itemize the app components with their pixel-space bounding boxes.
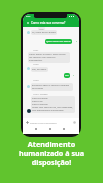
staticText: Como esta sua conversa? bbox=[31, 21, 66, 25]
staticText: Quero saber dos planos bbox=[46, 40, 71, 43]
button[interactable]: Send bbox=[73, 121, 76, 124]
staticText: Digite uma mensagem bbox=[30, 121, 57, 124]
button[interactable]: Enviamos agora o resumo completo dos pla… bbox=[31, 83, 73, 91]
button[interactable]: Claro! Temos 3 planos. Posso enviar um r… bbox=[28, 52, 70, 63]
staticText: 9:41 bbox=[26, 15, 31, 18]
staticText: 12:32 bbox=[33, 63, 39, 66]
staticText: Claro! Temos 3 planos. Posso enviar um r… bbox=[29, 53, 69, 62]
staticText: Oi, como posso ajudar? bbox=[32, 31, 56, 34]
staticText: Plano Essencial Plano Plus Plano Premium… bbox=[32, 97, 74, 112]
staticText: 12:33 bbox=[33, 79, 39, 82]
staticText: 12:34 · Equipe bbox=[33, 93, 48, 96]
button[interactable]: Quero saber dos planos bbox=[45, 39, 72, 44]
button[interactable]: Plano Essencial Plano Plus Plano Premium… bbox=[31, 96, 75, 113]
button[interactable]: Attach bbox=[26, 121, 29, 124]
staticText: Ok! bbox=[65, 74, 69, 77]
staticText: Sim, por favor bbox=[32, 68, 47, 71]
button[interactable]: Oi, como posso ajudar? bbox=[31, 30, 57, 35]
button[interactable]: Sim, por favor bbox=[31, 67, 48, 72]
button[interactable]: Ok! bbox=[64, 73, 70, 78]
staticText: Atendimento humanizado à sua disposição! bbox=[0, 139, 103, 167]
staticText: Enviamos agora o resumo completo dos pla… bbox=[32, 84, 72, 90]
staticText: HOJE bbox=[39, 28, 44, 31]
staticText: 12:31 bbox=[33, 49, 39, 52]
